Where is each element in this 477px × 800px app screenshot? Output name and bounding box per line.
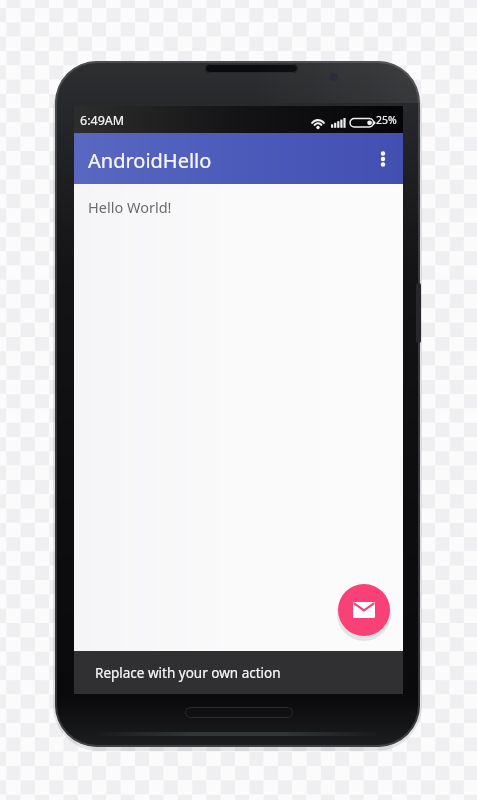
button[interactable]: Replace with your own action	[74, 651, 403, 694]
staticText: Hello World!	[88, 197, 172, 217]
button[interactable]: AndroidHello	[74, 133, 403, 184]
button[interactable]	[375, 151, 391, 167]
staticText: Replace with your own action	[95, 664, 281, 682]
staticText: 25%	[376, 113, 397, 127]
staticText: 6:49AM	[80, 112, 125, 129]
staticText: AndroidHello	[88, 147, 212, 174]
button[interactable]	[338, 584, 390, 636]
